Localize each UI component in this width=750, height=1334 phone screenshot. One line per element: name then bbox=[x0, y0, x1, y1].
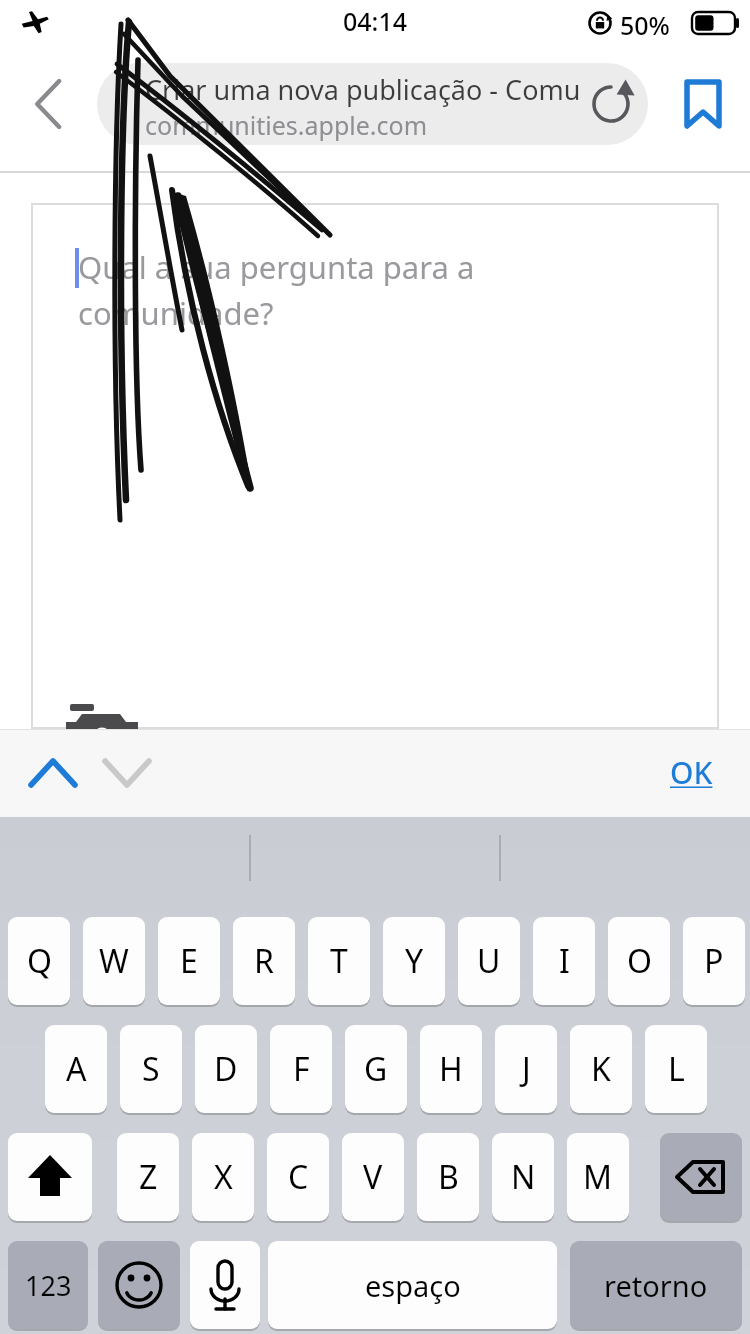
button[interactable]: C bbox=[267, 1133, 329, 1221]
button[interactable]: Reload bbox=[582, 74, 640, 134]
button[interactable]: Q bbox=[8, 917, 70, 1005]
button[interactable]: Return bbox=[570, 1241, 742, 1329]
staticText: comunidade? bbox=[78, 292, 274, 334]
button[interactable]: U bbox=[458, 917, 520, 1005]
staticText: R bbox=[254, 939, 274, 983]
button[interactable]: G bbox=[345, 1025, 407, 1113]
button[interactable]: Emoji bbox=[98, 1241, 180, 1329]
button[interactable]: Back bbox=[12, 74, 74, 134]
button[interactable]: M bbox=[567, 1133, 629, 1221]
button[interactable]: F bbox=[270, 1025, 332, 1113]
staticText: P bbox=[704, 939, 724, 983]
staticText: communities.apple.com bbox=[145, 108, 428, 142]
button[interactable]: L bbox=[645, 1025, 707, 1113]
button[interactable]: R bbox=[233, 917, 295, 1005]
button[interactable]: Bookmarks bbox=[674, 74, 732, 134]
staticText: Criar uma nova publicação - Comu bbox=[145, 71, 581, 108]
staticText: M bbox=[583, 1155, 613, 1199]
button[interactable]: Backspace bbox=[660, 1133, 742, 1221]
button[interactable]: Qual a sua pergunta para a bbox=[32, 204, 718, 728]
staticText: Y bbox=[405, 939, 424, 983]
staticText: H bbox=[439, 1047, 463, 1091]
staticText: 123 bbox=[25, 1267, 72, 1304]
button[interactable]: Dictation bbox=[190, 1241, 260, 1329]
staticText: retorno bbox=[604, 1266, 708, 1305]
staticText: D bbox=[214, 1047, 238, 1091]
staticText: J bbox=[522, 1047, 531, 1091]
button[interactable]: I bbox=[533, 917, 595, 1005]
staticText: Qual a sua pergunta para a bbox=[78, 246, 475, 288]
staticText: V bbox=[363, 1155, 383, 1199]
staticText: espaço bbox=[365, 1266, 461, 1305]
button[interactable]: A bbox=[45, 1025, 107, 1113]
staticText: U bbox=[477, 939, 501, 983]
staticText: N bbox=[511, 1155, 536, 1199]
staticText: I bbox=[559, 939, 570, 983]
button[interactable]: D bbox=[195, 1025, 257, 1113]
button[interactable]: S bbox=[120, 1025, 182, 1113]
button[interactable]: OK bbox=[650, 739, 732, 805]
staticText: A bbox=[66, 1047, 87, 1091]
button[interactable]: B bbox=[417, 1133, 479, 1221]
button[interactable]: N bbox=[492, 1133, 554, 1221]
button[interactable]: E bbox=[158, 917, 220, 1005]
staticText: W bbox=[99, 939, 129, 983]
staticText: G bbox=[364, 1047, 388, 1091]
button[interactable]: Previous field bbox=[18, 743, 88, 803]
staticText: 50% bbox=[620, 8, 670, 42]
button[interactable]: P bbox=[683, 917, 745, 1005]
staticText: S bbox=[142, 1047, 160, 1091]
button[interactable]: J bbox=[495, 1025, 557, 1113]
button[interactable]: Y bbox=[383, 917, 445, 1005]
staticText: OK bbox=[670, 752, 713, 793]
button[interactable]: Numbers bbox=[8, 1241, 88, 1329]
button[interactable]: Z bbox=[117, 1133, 179, 1221]
button[interactable]: O bbox=[608, 917, 670, 1005]
button[interactable]: W bbox=[83, 917, 145, 1005]
button[interactable]: V bbox=[342, 1133, 404, 1221]
staticText: Z bbox=[139, 1155, 158, 1199]
staticText: L bbox=[668, 1047, 685, 1091]
staticText: T bbox=[330, 939, 348, 983]
button[interactable]: Shift bbox=[8, 1133, 92, 1221]
staticText: Q bbox=[27, 939, 52, 983]
staticText: E bbox=[180, 939, 198, 983]
staticText: X bbox=[214, 1155, 233, 1199]
staticText: C bbox=[288, 1155, 309, 1199]
button[interactable]: Criar uma nova publicação - Comu bbox=[97, 63, 648, 145]
staticText: B bbox=[438, 1155, 459, 1199]
button[interactable]: H bbox=[420, 1025, 482, 1113]
button[interactable]: T bbox=[308, 917, 370, 1005]
staticText: O bbox=[627, 939, 652, 983]
staticText: K bbox=[591, 1047, 611, 1091]
button[interactable]: Next field bbox=[92, 743, 162, 803]
button[interactable]: K bbox=[570, 1025, 632, 1113]
staticText: 04:14 bbox=[343, 4, 408, 38]
button[interactable]: Space bbox=[268, 1241, 557, 1329]
staticText: F bbox=[293, 1047, 310, 1091]
button[interactable]: X bbox=[192, 1133, 254, 1221]
